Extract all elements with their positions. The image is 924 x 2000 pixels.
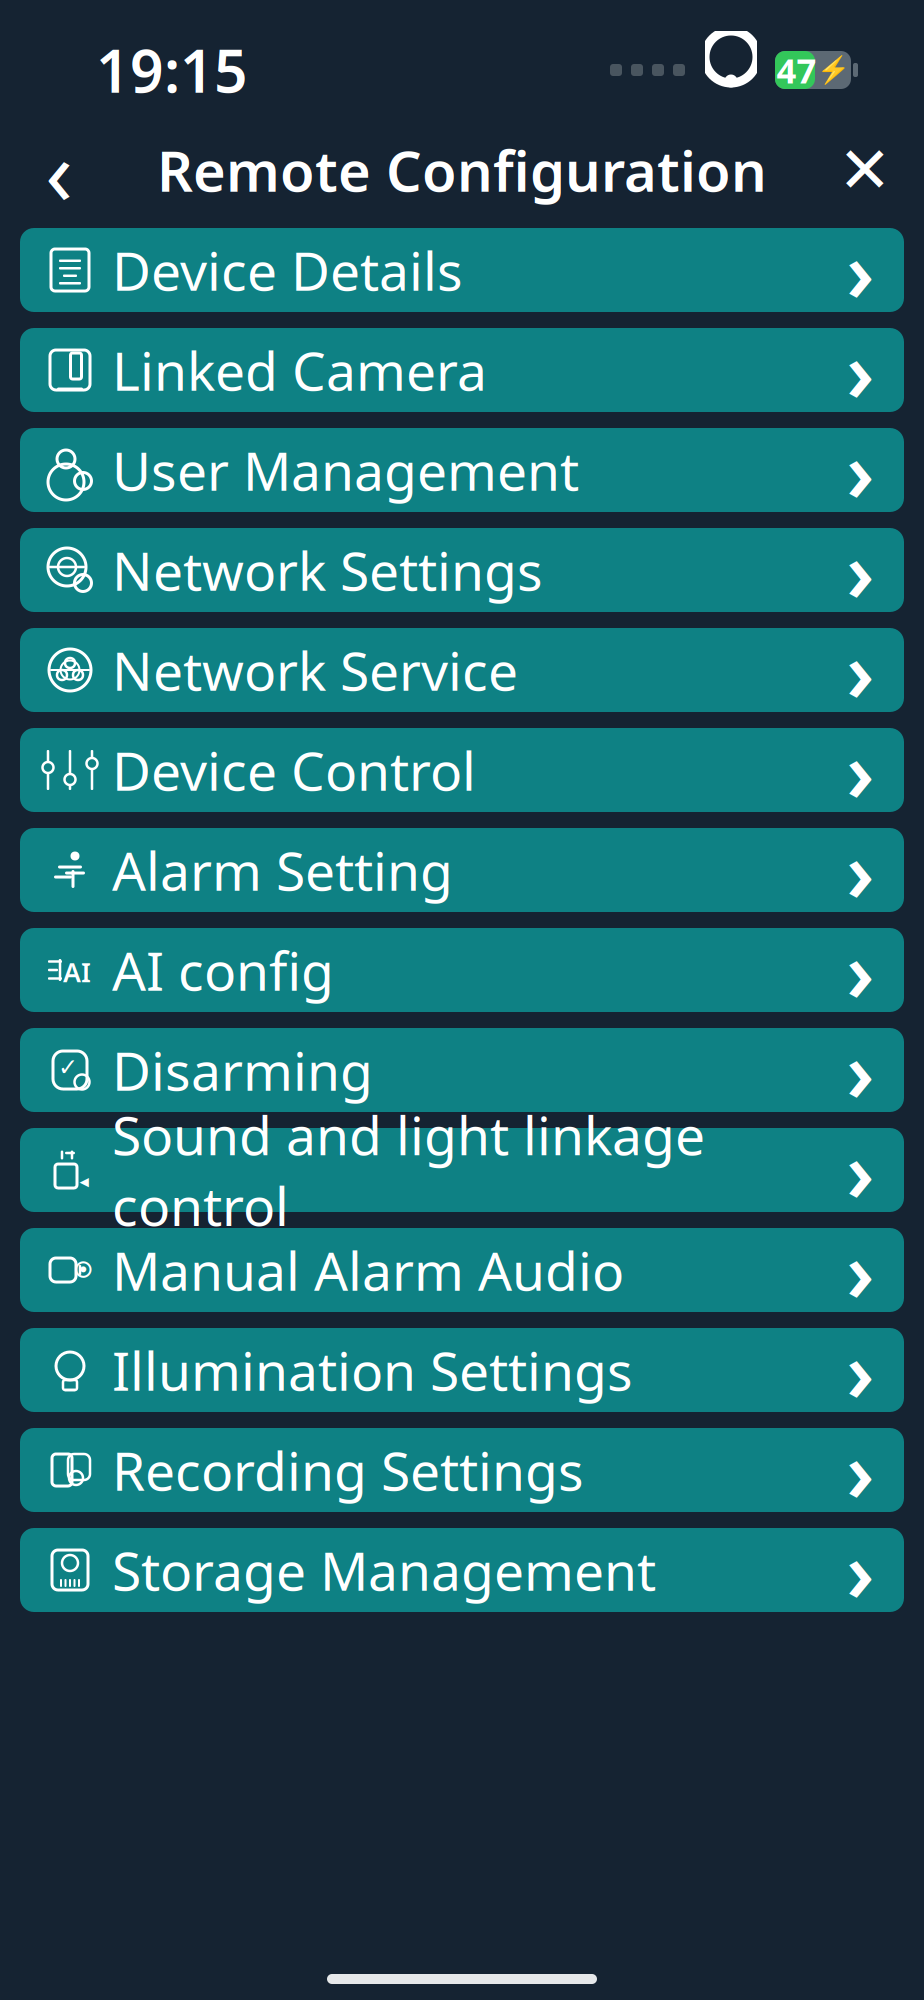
- staticText: ›: [846, 315, 874, 425]
- staticText: ›: [846, 1315, 874, 1425]
- button[interactable]: Recording Settings: [20, 1428, 904, 1512]
- staticText: ›: [846, 515, 874, 625]
- button[interactable]: ◂: [20, 1128, 904, 1212]
- staticText: Device Control: [112, 735, 476, 805]
- staticText: Network Settings: [112, 535, 543, 605]
- staticText: Remote Configuration: [157, 133, 767, 207]
- staticText: Network Service: [112, 635, 518, 705]
- staticText: ›: [846, 915, 874, 1025]
- button[interactable]: Alarm Setting: [20, 828, 904, 912]
- staticText: AI config: [112, 935, 334, 1005]
- staticText: 47: [776, 47, 816, 93]
- staticText: Manual Alarm Audio: [112, 1235, 624, 1305]
- staticText: ›: [846, 1115, 874, 1225]
- staticText: Device Details: [112, 235, 463, 305]
- staticText: ◂: [79, 1170, 88, 1192]
- button[interactable]: Network Service: [20, 628, 904, 712]
- staticText: Disarming: [112, 1035, 373, 1105]
- staticText: ✓: [58, 1053, 78, 1081]
- staticText: Illumination Settings: [112, 1335, 633, 1405]
- button[interactable]: Device Details: [20, 228, 904, 312]
- button[interactable]: Close: [820, 125, 910, 215]
- staticText: ‹: [45, 110, 73, 230]
- staticText: ⦿: [73, 1261, 92, 1279]
- button[interactable]: Illumination Settings: [20, 1328, 904, 1412]
- button[interactable]: Linked Camera: [20, 328, 904, 412]
- staticText: ✕: [838, 134, 892, 206]
- staticText: ›: [846, 1215, 874, 1325]
- button[interactable]: AI: [20, 928, 904, 1012]
- button[interactable]: Storage Management: [20, 1528, 904, 1612]
- button[interactable]: User Management: [20, 428, 904, 512]
- staticText: ›: [846, 1515, 874, 1625]
- button[interactable]: Device Control: [20, 728, 904, 812]
- staticText: Alarm Setting: [112, 835, 453, 905]
- staticText: Recording Settings: [112, 1435, 584, 1505]
- staticText: ›: [846, 1415, 874, 1525]
- staticText: AI: [63, 954, 91, 990]
- staticText: ›: [846, 715, 874, 825]
- button[interactable]: Back: [14, 125, 104, 215]
- button[interactable]: Network Settings: [20, 528, 904, 612]
- button[interactable]: ✓: [20, 1028, 904, 1112]
- staticText: ›: [846, 615, 874, 725]
- staticText: ⚡: [816, 55, 849, 85]
- staticText: Sound and light linkage control: [112, 1099, 705, 1241]
- staticText: ›: [846, 815, 874, 925]
- staticText: 19:15: [96, 31, 248, 109]
- button[interactable]: ⦿: [20, 1228, 904, 1312]
- staticText: Linked Camera: [112, 335, 487, 405]
- staticText: ›: [846, 415, 874, 525]
- staticText: User Management: [112, 435, 579, 505]
- staticText: ›: [846, 1015, 874, 1125]
- staticText: Storage Management: [112, 1535, 656, 1605]
- staticText: ›: [846, 215, 874, 325]
